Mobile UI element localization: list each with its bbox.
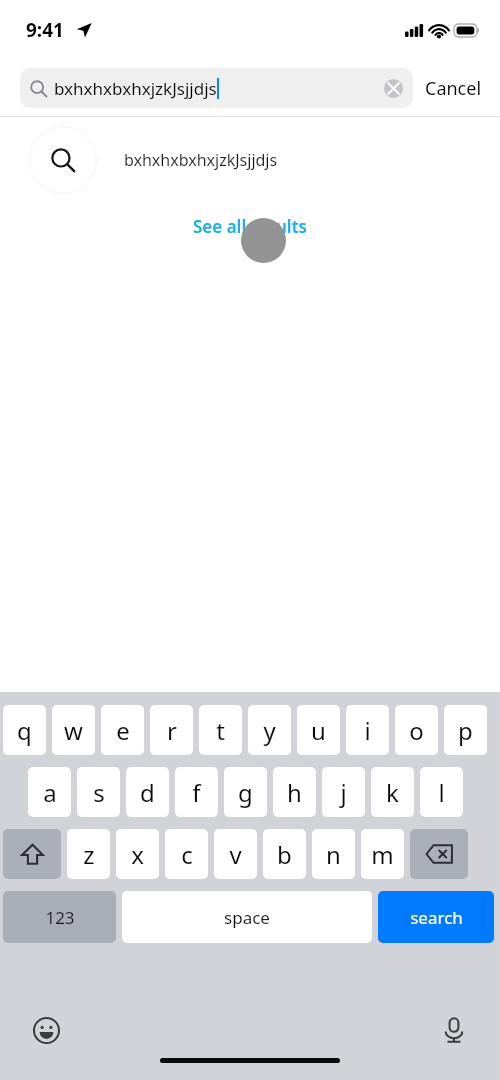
staticText: s: [93, 776, 105, 809]
staticText: See all results: [193, 215, 307, 238]
button[interactable]: t: [199, 705, 242, 755]
staticText: space: [224, 906, 270, 929]
button[interactable]: k: [371, 767, 414, 817]
staticText: h: [287, 776, 302, 809]
button[interactable]: b: [263, 829, 306, 879]
staticText: j: [340, 776, 347, 809]
staticText: q: [17, 714, 32, 747]
button[interactable]: m: [361, 829, 404, 879]
button[interactable]: w: [52, 705, 95, 755]
button[interactable]: Cancel: [413, 76, 484, 101]
button[interactable]: u: [297, 705, 340, 755]
staticText: e: [116, 714, 130, 747]
button[interactable]: 123: [3, 891, 116, 943]
staticText: y: [263, 714, 276, 747]
staticText: x: [131, 838, 144, 871]
staticText: n: [326, 838, 341, 871]
button[interactable]: y: [248, 705, 291, 755]
button[interactable]: a: [28, 767, 71, 817]
button[interactable]: Shift: [3, 829, 61, 879]
staticText: Cancel: [425, 76, 482, 101]
staticText: m: [371, 838, 394, 871]
staticText: o: [409, 714, 424, 747]
button[interactable]: bxhxhxbxhxjzkJsjjdjs: [0, 117, 500, 203]
button[interactable]: h: [273, 767, 316, 817]
staticText: w: [64, 714, 83, 747]
staticText: bxhxhxbxhxjzkJsjjdjs: [54, 77, 217, 100]
button[interactable]: z: [67, 829, 110, 879]
button[interactable]: space: [122, 891, 372, 943]
button[interactable]: See all results: [185, 207, 315, 246]
staticText: v: [229, 838, 242, 871]
staticText: i: [364, 714, 371, 747]
button[interactable]: s: [77, 767, 120, 817]
staticText: k: [386, 776, 399, 809]
staticText: g: [238, 776, 253, 809]
staticText: 123: [45, 906, 75, 929]
staticText: l: [438, 776, 445, 809]
staticText: z: [83, 838, 95, 871]
button[interactable]: search: [378, 891, 494, 943]
button[interactable]: Backspace: [410, 829, 468, 879]
button[interactable]: r: [150, 705, 193, 755]
staticText: d: [140, 776, 155, 809]
staticText: f: [192, 776, 201, 809]
staticText: r: [167, 714, 177, 747]
button[interactable]: Emoji: [28, 1012, 64, 1048]
button[interactable]: v: [214, 829, 257, 879]
staticText: b: [277, 838, 292, 871]
staticText: 9:41: [26, 17, 64, 43]
staticText: u: [311, 714, 326, 747]
button[interactable]: i: [346, 705, 389, 755]
staticText: search: [410, 906, 463, 929]
button[interactable]: g: [224, 767, 267, 817]
button[interactable]: Dictation: [436, 1012, 472, 1048]
button[interactable]: n: [312, 829, 355, 879]
staticText: a: [43, 776, 57, 809]
button[interactable]: q: [3, 705, 46, 755]
button[interactable]: f: [175, 767, 218, 817]
button[interactable]: j: [322, 767, 365, 817]
staticText: t: [216, 714, 225, 747]
button[interactable]: e: [101, 705, 144, 755]
button[interactable]: bxhxhxbxhxjzkJsjjdjs: [20, 68, 413, 108]
button[interactable]: l: [420, 767, 463, 817]
staticText: p: [458, 714, 473, 747]
staticText: bxhxhxbxhxjzkJsjjdjs: [124, 149, 278, 171]
button[interactable]: d: [126, 767, 169, 817]
button[interactable]: c: [165, 829, 208, 879]
button[interactable]: o: [395, 705, 438, 755]
button[interactable]: p: [444, 705, 487, 755]
button[interactable]: x: [116, 829, 159, 879]
button[interactable]: Clear text: [384, 79, 403, 98]
staticText: c: [181, 838, 193, 871]
